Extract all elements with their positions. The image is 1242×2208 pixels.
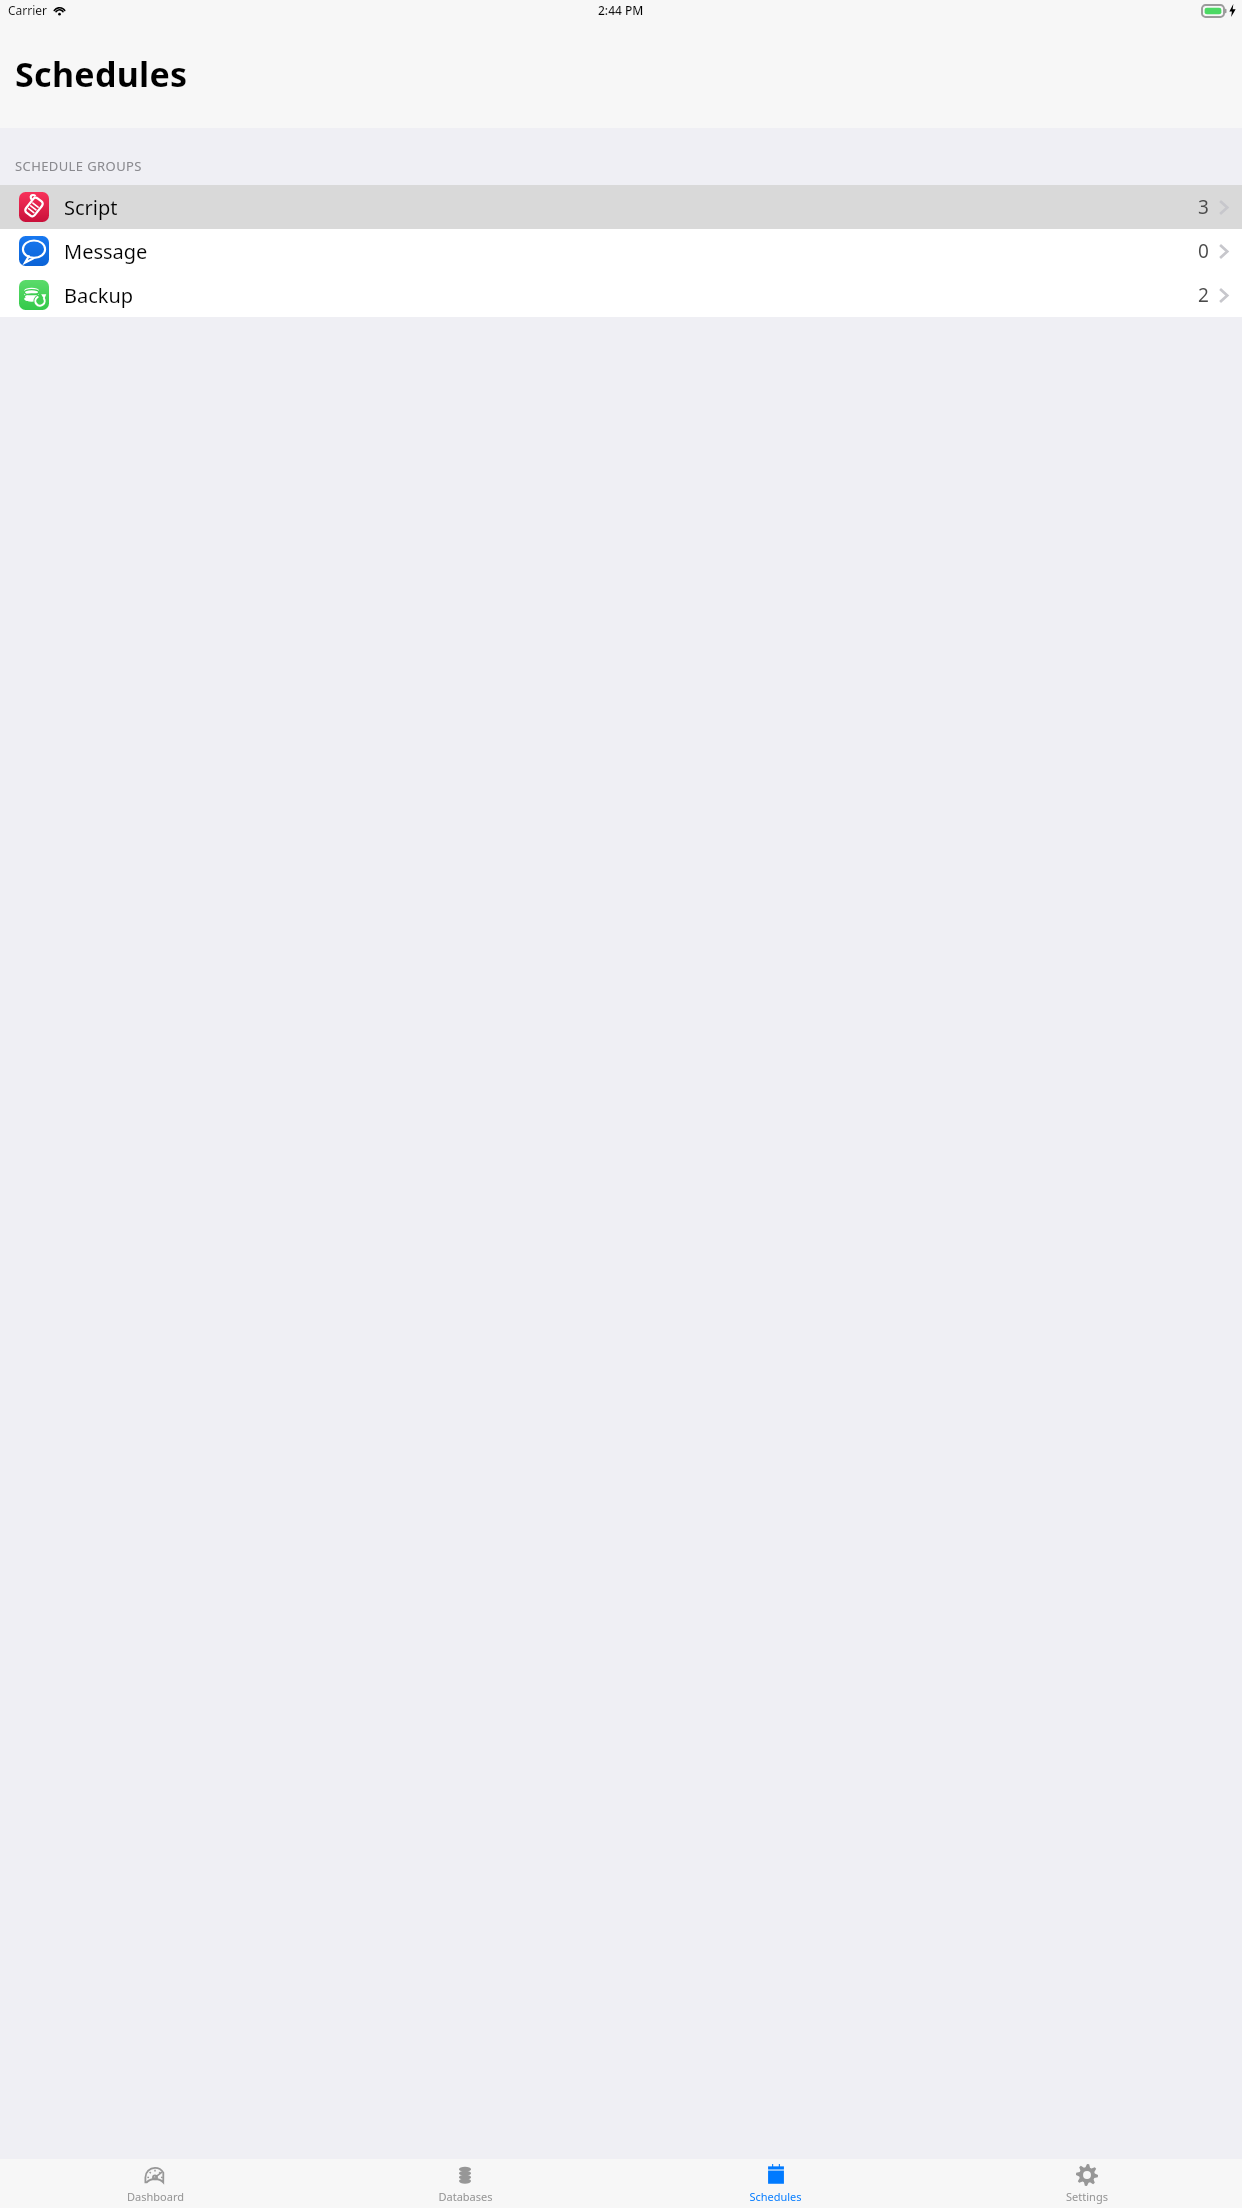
button[interactable]: Schedules <box>620 2159 931 2208</box>
staticText: Message <box>64 238 1198 265</box>
staticText: Schedules <box>749 2189 802 2204</box>
button[interactable]: Databases <box>310 2159 620 2208</box>
staticText: Dashboard <box>127 2189 184 2204</box>
staticText: Carrier <box>8 2 48 18</box>
button[interactable]: Settings <box>931 2159 1242 2208</box>
staticText: Settings <box>1066 2189 1108 2204</box>
staticText: Backup <box>64 282 1198 309</box>
button[interactable]: Script <box>0 185 1242 229</box>
button[interactable]: Dashboard <box>0 2159 310 2208</box>
staticText: 2 <box>1198 282 1209 308</box>
staticText: Script <box>64 194 1198 221</box>
button[interactable]: Backup <box>0 273 1242 317</box>
button[interactable]: Message <box>0 229 1242 273</box>
staticText: SCHEDULE GROUPS <box>15 157 142 175</box>
staticText: Schedules <box>15 51 188 97</box>
staticText: 0 <box>1198 238 1209 264</box>
staticText: Databases <box>438 2189 493 2204</box>
staticText: 2:44 PM <box>598 2 644 18</box>
staticText: 3 <box>1198 194 1209 220</box>
